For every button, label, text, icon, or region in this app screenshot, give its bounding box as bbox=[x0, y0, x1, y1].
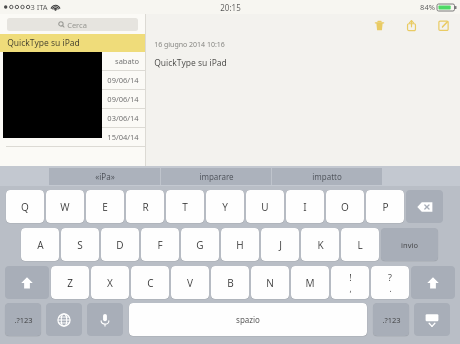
staticText: 03/06/14 bbox=[107, 113, 139, 123]
staticText: F bbox=[157, 238, 163, 252]
button[interactable]: X bbox=[91, 266, 129, 299]
button[interactable]: Compose bbox=[432, 14, 454, 36]
button[interactable]: Z bbox=[51, 266, 89, 299]
staticText: invio bbox=[401, 240, 418, 250]
button[interactable]: ! bbox=[331, 266, 369, 299]
staticText: R bbox=[142, 200, 149, 214]
button[interactable]: Dictate bbox=[87, 303, 123, 336]
button[interactable]: Share bbox=[400, 14, 422, 36]
button[interactable]: H bbox=[221, 228, 259, 261]
button[interactable]: 09/06/14 bbox=[0, 71, 145, 89]
button[interactable]: Shift bbox=[5, 266, 49, 299]
button[interactable]: ? bbox=[371, 266, 409, 299]
button[interactable]: Q bbox=[6, 190, 44, 223]
staticText: O bbox=[341, 200, 349, 214]
staticText: QuickType su iPad bbox=[7, 37, 80, 49]
staticText: QuickType su iPad bbox=[154, 57, 227, 69]
button[interactable]: 03/06/14 bbox=[0, 109, 145, 127]
button[interactable]: R bbox=[126, 190, 164, 223]
staticText: E bbox=[102, 200, 108, 214]
button[interactable]: impatto bbox=[272, 168, 382, 185]
staticText: 84% bbox=[420, 2, 435, 12]
button[interactable]: A bbox=[21, 228, 59, 261]
staticText: T bbox=[182, 200, 188, 214]
staticText: C bbox=[147, 276, 154, 290]
staticText: 3 ITA bbox=[30, 2, 48, 12]
button[interactable]: 09/06/14 bbox=[0, 90, 145, 108]
button[interactable]: J bbox=[261, 228, 299, 261]
button[interactable]: «iPa» bbox=[49, 168, 160, 185]
button[interactable]: invio bbox=[381, 228, 438, 261]
staticText: L bbox=[357, 238, 363, 252]
staticText: S bbox=[77, 238, 83, 252]
staticText: «iPa» bbox=[95, 171, 115, 182]
button[interactable]: .?123 bbox=[5, 303, 41, 336]
staticText: .?123 bbox=[382, 315, 401, 325]
staticText: N bbox=[266, 276, 274, 290]
button[interactable]: Hide keyboard bbox=[414, 303, 450, 336]
staticText: impatto bbox=[312, 171, 342, 182]
button[interactable]: Y bbox=[206, 190, 244, 223]
staticText: M bbox=[305, 276, 315, 290]
button[interactable]: Cerca bbox=[7, 18, 138, 31]
button[interactable]: spazio bbox=[129, 303, 367, 336]
button[interactable]: imparare bbox=[161, 168, 271, 185]
button[interactable]: O bbox=[326, 190, 364, 223]
staticText: X bbox=[107, 276, 113, 290]
button[interactable]: Shift bbox=[411, 266, 455, 299]
button[interactable]: E bbox=[86, 190, 124, 223]
staticText: B bbox=[227, 276, 234, 290]
staticText: 15/04/14 bbox=[107, 132, 139, 142]
button[interactable]: 15/04/14 bbox=[0, 128, 145, 146]
staticText: K bbox=[317, 238, 324, 252]
button[interactable]: U bbox=[246, 190, 284, 223]
staticText: .?123 bbox=[14, 315, 33, 325]
staticText: J bbox=[279, 238, 282, 252]
staticText: Z bbox=[67, 276, 73, 290]
button[interactable]: QuickType su iPad bbox=[0, 34, 145, 52]
button[interactable]: sabato bbox=[0, 52, 145, 70]
staticText: 20:15 bbox=[220, 2, 241, 13]
button[interactable]: S bbox=[61, 228, 99, 261]
staticText: , bbox=[349, 283, 352, 294]
button[interactable]: G bbox=[181, 228, 219, 261]
staticText: A bbox=[37, 238, 44, 252]
button[interactable]: C bbox=[131, 266, 169, 299]
button[interactable]: W bbox=[46, 190, 84, 223]
staticText: 09/06/14 bbox=[107, 75, 139, 85]
button[interactable]: M bbox=[291, 266, 329, 299]
staticText: U bbox=[261, 200, 269, 214]
button[interactable]: Change keyboard bbox=[46, 303, 82, 336]
staticText: G bbox=[196, 238, 204, 252]
button[interactable]: N bbox=[251, 266, 289, 299]
button[interactable]: V bbox=[171, 266, 209, 299]
staticText: V bbox=[187, 276, 193, 290]
staticText: 09/06/14 bbox=[107, 94, 139, 104]
staticText: Q bbox=[21, 200, 29, 214]
staticText: . bbox=[389, 283, 392, 294]
staticText: imparare bbox=[199, 171, 234, 182]
button[interactable]: Backspace bbox=[406, 190, 443, 223]
staticText: Cerca bbox=[67, 20, 87, 30]
button[interactable]: D bbox=[101, 228, 139, 261]
staticText: spazio bbox=[236, 314, 260, 325]
staticText: W bbox=[60, 200, 70, 214]
button[interactable]: L bbox=[341, 228, 379, 261]
button[interactable]: K bbox=[301, 228, 339, 261]
button[interactable]: F bbox=[141, 228, 179, 261]
staticText: sabato bbox=[115, 56, 139, 66]
button[interactable]: Delete bbox=[368, 14, 390, 36]
staticText: ! bbox=[349, 271, 352, 283]
button[interactable]: .?123 bbox=[373, 303, 409, 336]
button[interactable]: I bbox=[286, 190, 324, 223]
staticText: H bbox=[236, 238, 244, 252]
button[interactable]: P bbox=[366, 190, 404, 223]
button[interactable]: T bbox=[166, 190, 204, 223]
staticText: 16 giugno 2014 10:16 bbox=[154, 40, 225, 50]
staticText: P bbox=[382, 200, 389, 214]
button[interactable]: B bbox=[211, 266, 249, 299]
staticText: D bbox=[116, 238, 124, 252]
staticText: ? bbox=[388, 271, 392, 283]
staticText: I bbox=[303, 200, 307, 214]
staticText: Y bbox=[222, 200, 228, 214]
